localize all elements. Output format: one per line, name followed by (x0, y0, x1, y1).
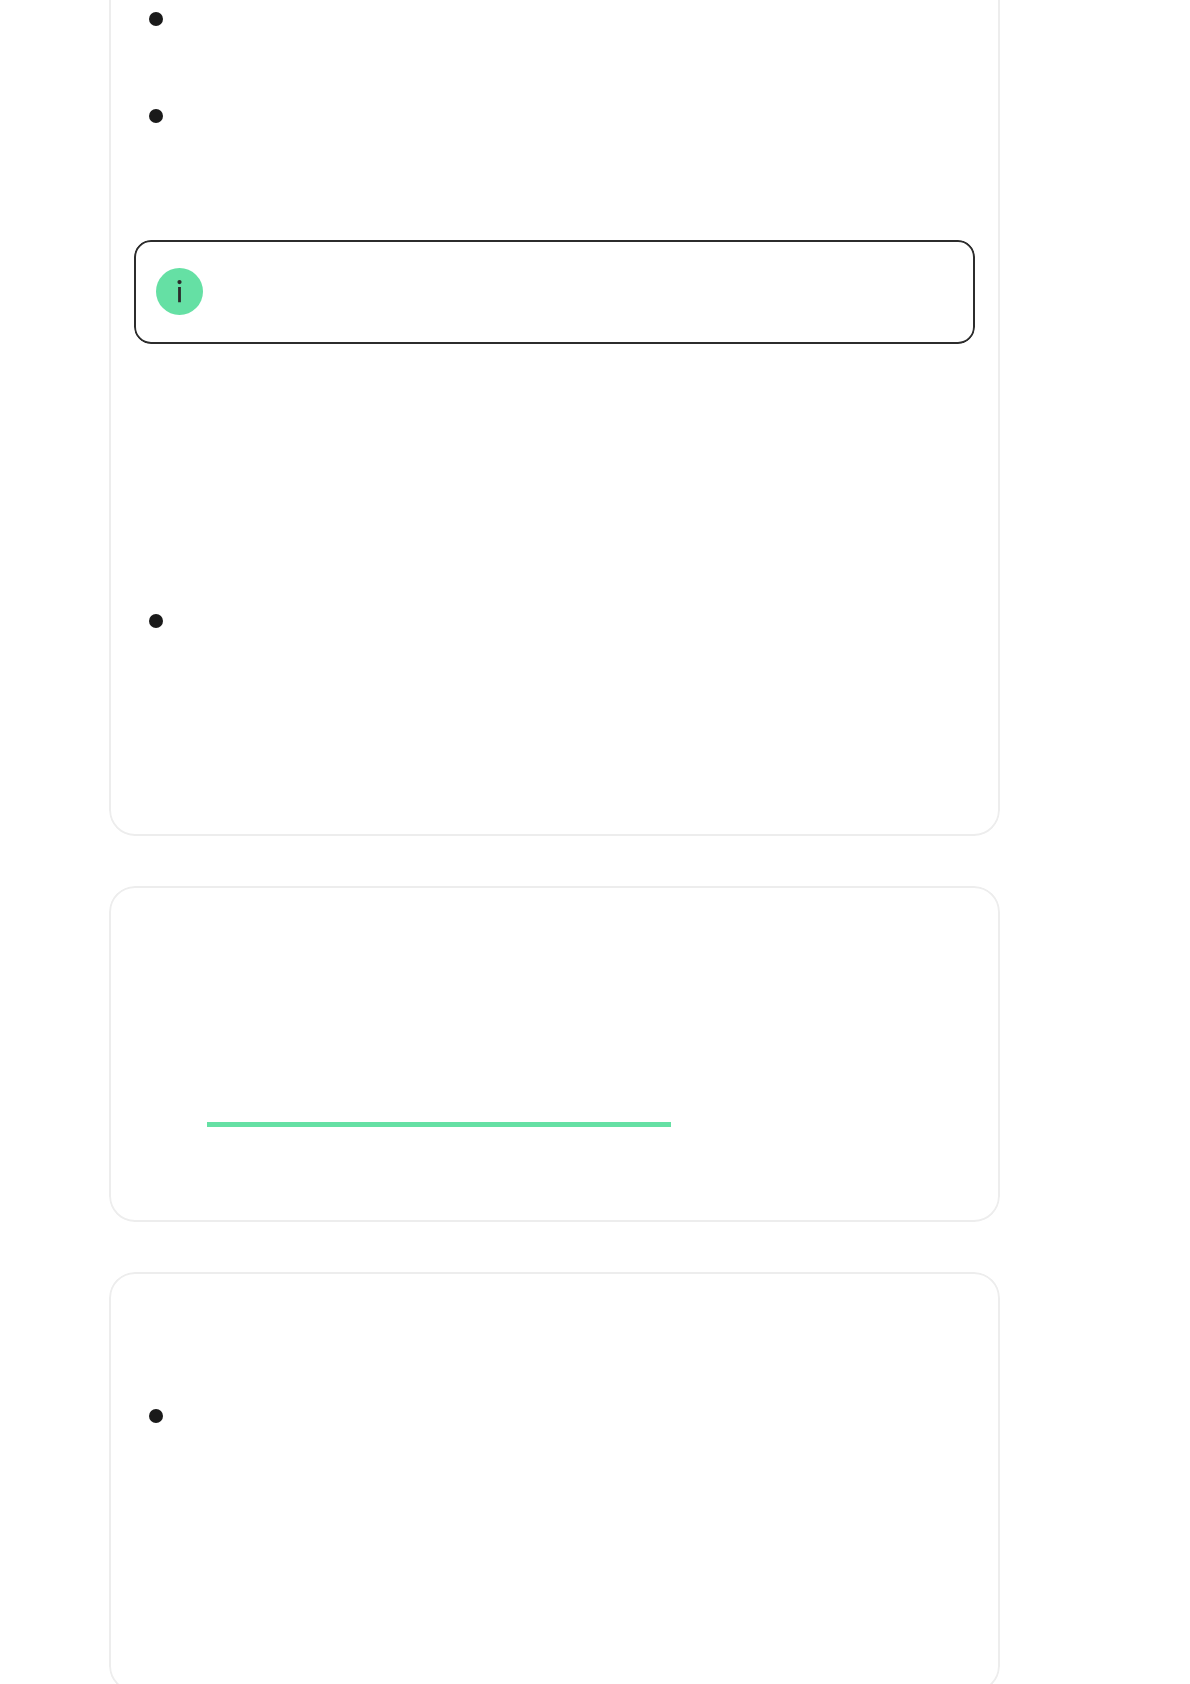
button[interactable]: Information (109, 0, 1000, 836)
button[interactable] (109, 886, 1000, 1222)
button[interactable] (109, 1272, 1000, 1684)
other: Information (156, 268, 203, 315)
button[interactable]: Information (134, 240, 975, 344)
